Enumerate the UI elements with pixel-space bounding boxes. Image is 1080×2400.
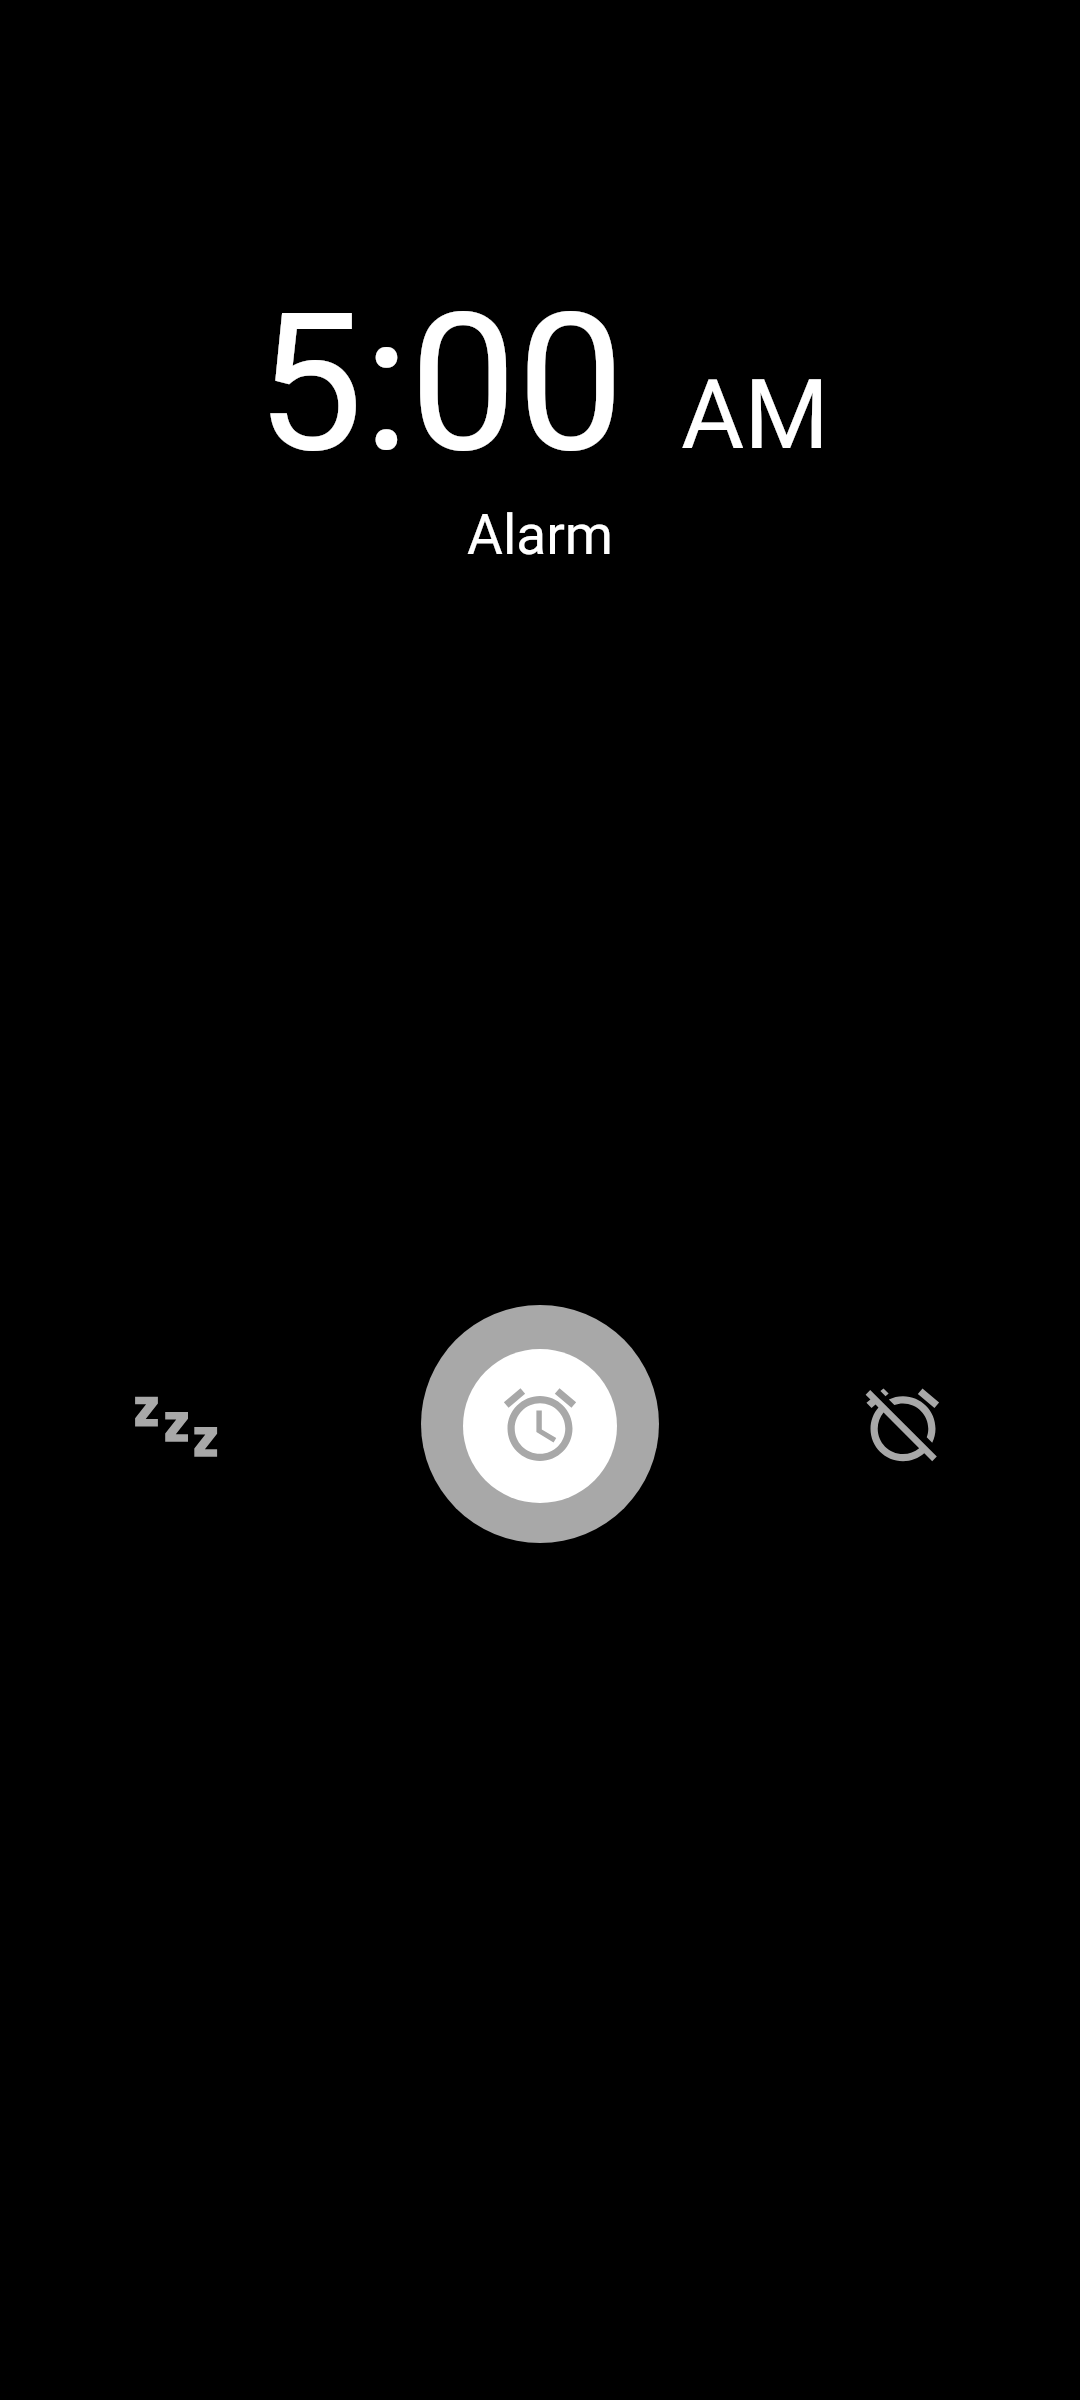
button[interactable]: Snooze — [116, 1365, 236, 1485]
button[interactable]: Dismiss alarm — [853, 1378, 953, 1478]
button[interactable]: Alarm — [421, 1305, 659, 1543]
staticText: AM — [681, 358, 829, 472]
staticText: 5:00 — [256, 272, 625, 496]
staticText: Alarm — [467, 503, 614, 567]
